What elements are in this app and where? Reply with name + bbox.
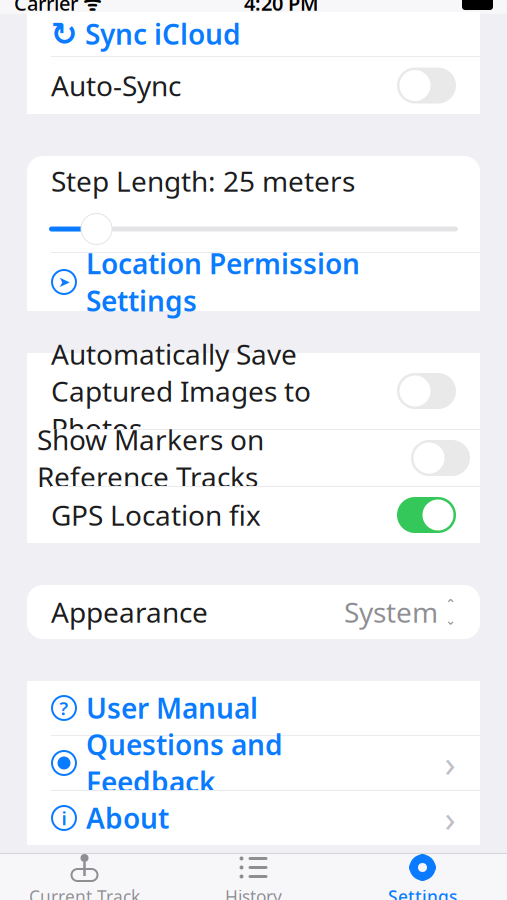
staticText: Automatically Save Captured Images to Ph… (51, 335, 311, 447)
staticText: Appearance (51, 593, 208, 631)
staticText: User Manual (86, 689, 258, 727)
button[interactable]: History (169, 854, 338, 900)
staticText: History (225, 885, 282, 900)
button[interactable]: Show Markers on Reference Tracks (27, 430, 480, 486)
button[interactable]: ➤ (27, 253, 480, 311)
staticText: Auto-Sync (51, 67, 181, 104)
button[interactable]: GPS Location fix (27, 487, 480, 543)
staticText: System (344, 593, 438, 631)
staticText: Sync iCloud (85, 15, 241, 53)
button[interactable]: i (27, 791, 480, 845)
staticText: Location Permission Settings (86, 245, 360, 319)
button[interactable]: ? (27, 681, 480, 735)
staticText: About (86, 799, 169, 837)
staticText: Settings (388, 885, 457, 900)
button[interactable]: Questions and Feedback (27, 736, 480, 790)
button[interactable]: ↻ (27, 12, 480, 56)
staticText: Show Markers on Reference Tracks (37, 421, 264, 495)
staticText: ➤ (58, 274, 70, 290)
staticText: Current Track (29, 885, 140, 900)
staticText: ⌄ (445, 612, 456, 628)
staticText: Carrier (14, 0, 78, 16)
staticText: ⌃ (445, 596, 456, 611)
staticText: Questions and Feedback (86, 726, 283, 800)
button[interactable]: Auto-Sync (27, 57, 480, 114)
staticText: ↻ (50, 16, 77, 52)
staticText: ᯤ (78, 0, 101, 16)
staticText: › (444, 794, 455, 842)
staticText: i (61, 806, 66, 830)
staticText: 4:20 PM (244, 0, 319, 16)
button[interactable]: Appearance (27, 585, 480, 639)
staticText: ? (59, 696, 68, 720)
button[interactable]: Settings (338, 854, 507, 900)
staticText: GPS Location fix (51, 496, 261, 534)
button[interactable]: Current Track (0, 854, 169, 900)
staticText: › (444, 739, 455, 787)
button[interactable]: Automatically Save Captured Images to Ph… (27, 353, 480, 429)
staticText: Step Length: 25 meters (51, 162, 355, 200)
